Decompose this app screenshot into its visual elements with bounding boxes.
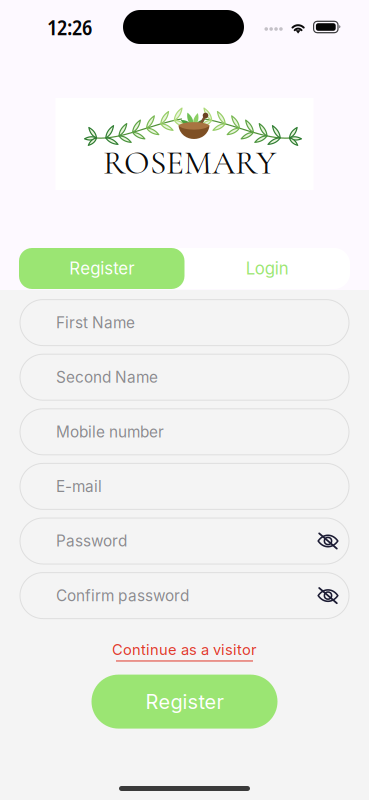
button[interactable]: Register — [91, 675, 277, 729]
staticText: Register — [145, 689, 223, 714]
button[interactable]: Login — [184, 248, 350, 289]
button[interactable]: Show password — [317, 532, 339, 550]
staticText: Register — [69, 258, 134, 279]
staticText: 12:26 — [47, 12, 92, 42]
staticText: Password — [56, 532, 127, 550]
button[interactable]: Show confirm password — [317, 587, 339, 605]
staticText: ROSEMARY — [103, 143, 276, 183]
staticText: Continue as a visitor — [112, 641, 257, 658]
staticText: First Name — [56, 313, 135, 332]
staticText: Mobile number — [56, 422, 164, 441]
staticText: Second Name — [56, 368, 158, 386]
staticText: E-mail — [56, 477, 102, 496]
staticText: Login — [246, 258, 289, 279]
staticText: Confirm password — [56, 586, 189, 605]
button[interactable]: Register — [19, 248, 184, 289]
button[interactable]: Continue as a visitor — [112, 643, 257, 660]
